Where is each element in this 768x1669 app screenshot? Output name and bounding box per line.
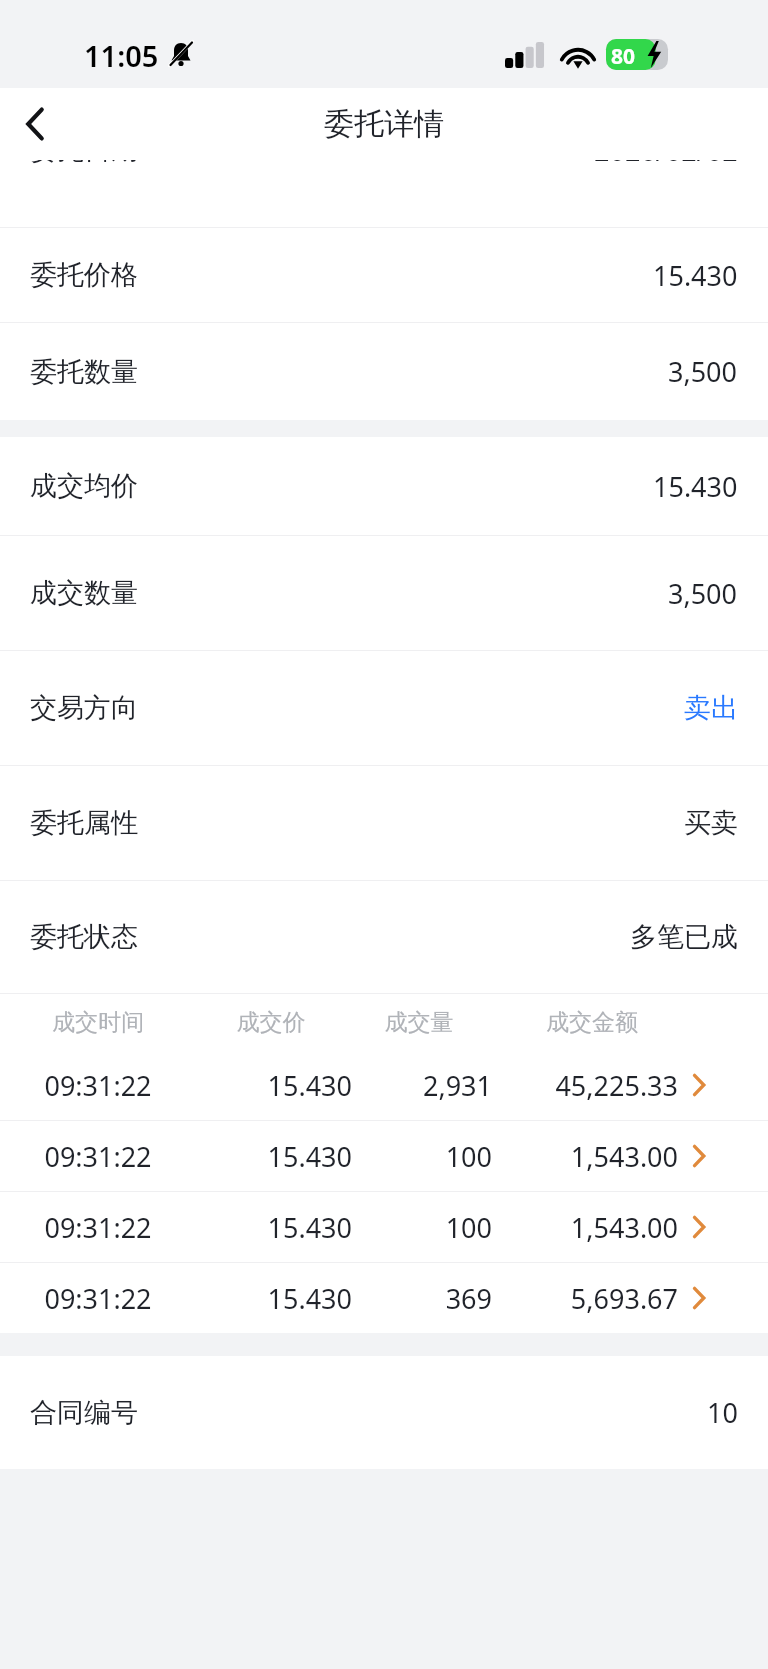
button[interactable]: 交易方向 <box>0 651 768 765</box>
button[interactable]: 委托日期 <box>0 160 768 184</box>
button[interactable]: 委托属性 <box>0 766 768 880</box>
button[interactable]: 09:31:22 <box>0 1192 768 1262</box>
staticText: 15.430 <box>196 1138 352 1175</box>
button[interactable]: 09:31:22 <box>0 1050 768 1120</box>
button[interactable]: 合同编号 <box>0 1356 768 1469</box>
staticText: 多笔已成 <box>630 920 738 954</box>
staticText: 15.430 <box>653 468 738 505</box>
staticText: 委托详情 <box>324 105 444 143</box>
staticText: 委托日期 <box>30 160 138 167</box>
staticText: 09:31:22 <box>0 1280 196 1317</box>
button[interactable]: Back <box>0 88 72 160</box>
staticText: 委托状态 <box>30 920 138 954</box>
staticText: 1,543.00 <box>492 1209 678 1246</box>
staticText: 委托数量 <box>30 355 138 389</box>
staticText: 09:31:22 <box>0 1209 196 1246</box>
staticText: 委托价格 <box>30 258 138 292</box>
staticText: 成交金额 <box>492 1008 692 1037</box>
button[interactable]: 09:31:22 <box>0 1263 768 1333</box>
staticText: 80 <box>611 42 636 71</box>
staticText: 09:31:22 <box>0 1138 196 1175</box>
button[interactable]: 成交数量 <box>0 536 768 650</box>
staticText: 2026/02/02 <box>594 160 738 169</box>
button[interactable]: 成交均价 <box>0 437 768 535</box>
staticText: 1,543.00 <box>492 1138 678 1175</box>
staticText: 09:31:22 <box>0 1067 196 1104</box>
staticText: 11:05 <box>84 36 159 75</box>
button[interactable]: 委托状态 <box>0 881 768 993</box>
staticText: 3,500 <box>668 353 738 390</box>
staticText: 3,500 <box>668 575 738 612</box>
staticText: 15.430 <box>196 1067 352 1104</box>
staticText: 卖出 <box>684 691 738 725</box>
staticText: 15.430 <box>196 1280 352 1317</box>
staticText: 委托属性 <box>30 806 138 840</box>
button[interactable]: 委托数量 <box>0 323 768 420</box>
staticText: 100 <box>352 1138 492 1175</box>
button[interactable]: 委托价格 <box>0 228 768 322</box>
staticText: 45,225.33 <box>492 1067 678 1104</box>
staticText: 15.430 <box>653 257 738 294</box>
staticText: 2,931 <box>352 1067 492 1104</box>
staticText: 5,693.67 <box>492 1280 678 1317</box>
staticText: 合同编号 <box>30 1396 138 1430</box>
staticText: 15.430 <box>196 1209 352 1246</box>
staticText: 100 <box>352 1209 492 1246</box>
staticText: 成交数量 <box>30 576 138 610</box>
staticText: 成交均价 <box>30 469 138 503</box>
staticText: 成交量 <box>346 1008 492 1037</box>
staticText: 交易方向 <box>30 691 138 725</box>
staticText: 成交时间 <box>0 1008 196 1037</box>
staticText: 10 <box>707 1394 738 1431</box>
staticText: 买卖 <box>684 806 738 840</box>
button[interactable]: 09:31:22 <box>0 1121 768 1191</box>
staticText: 369 <box>352 1280 492 1317</box>
staticText: 成交价 <box>196 1008 346 1037</box>
